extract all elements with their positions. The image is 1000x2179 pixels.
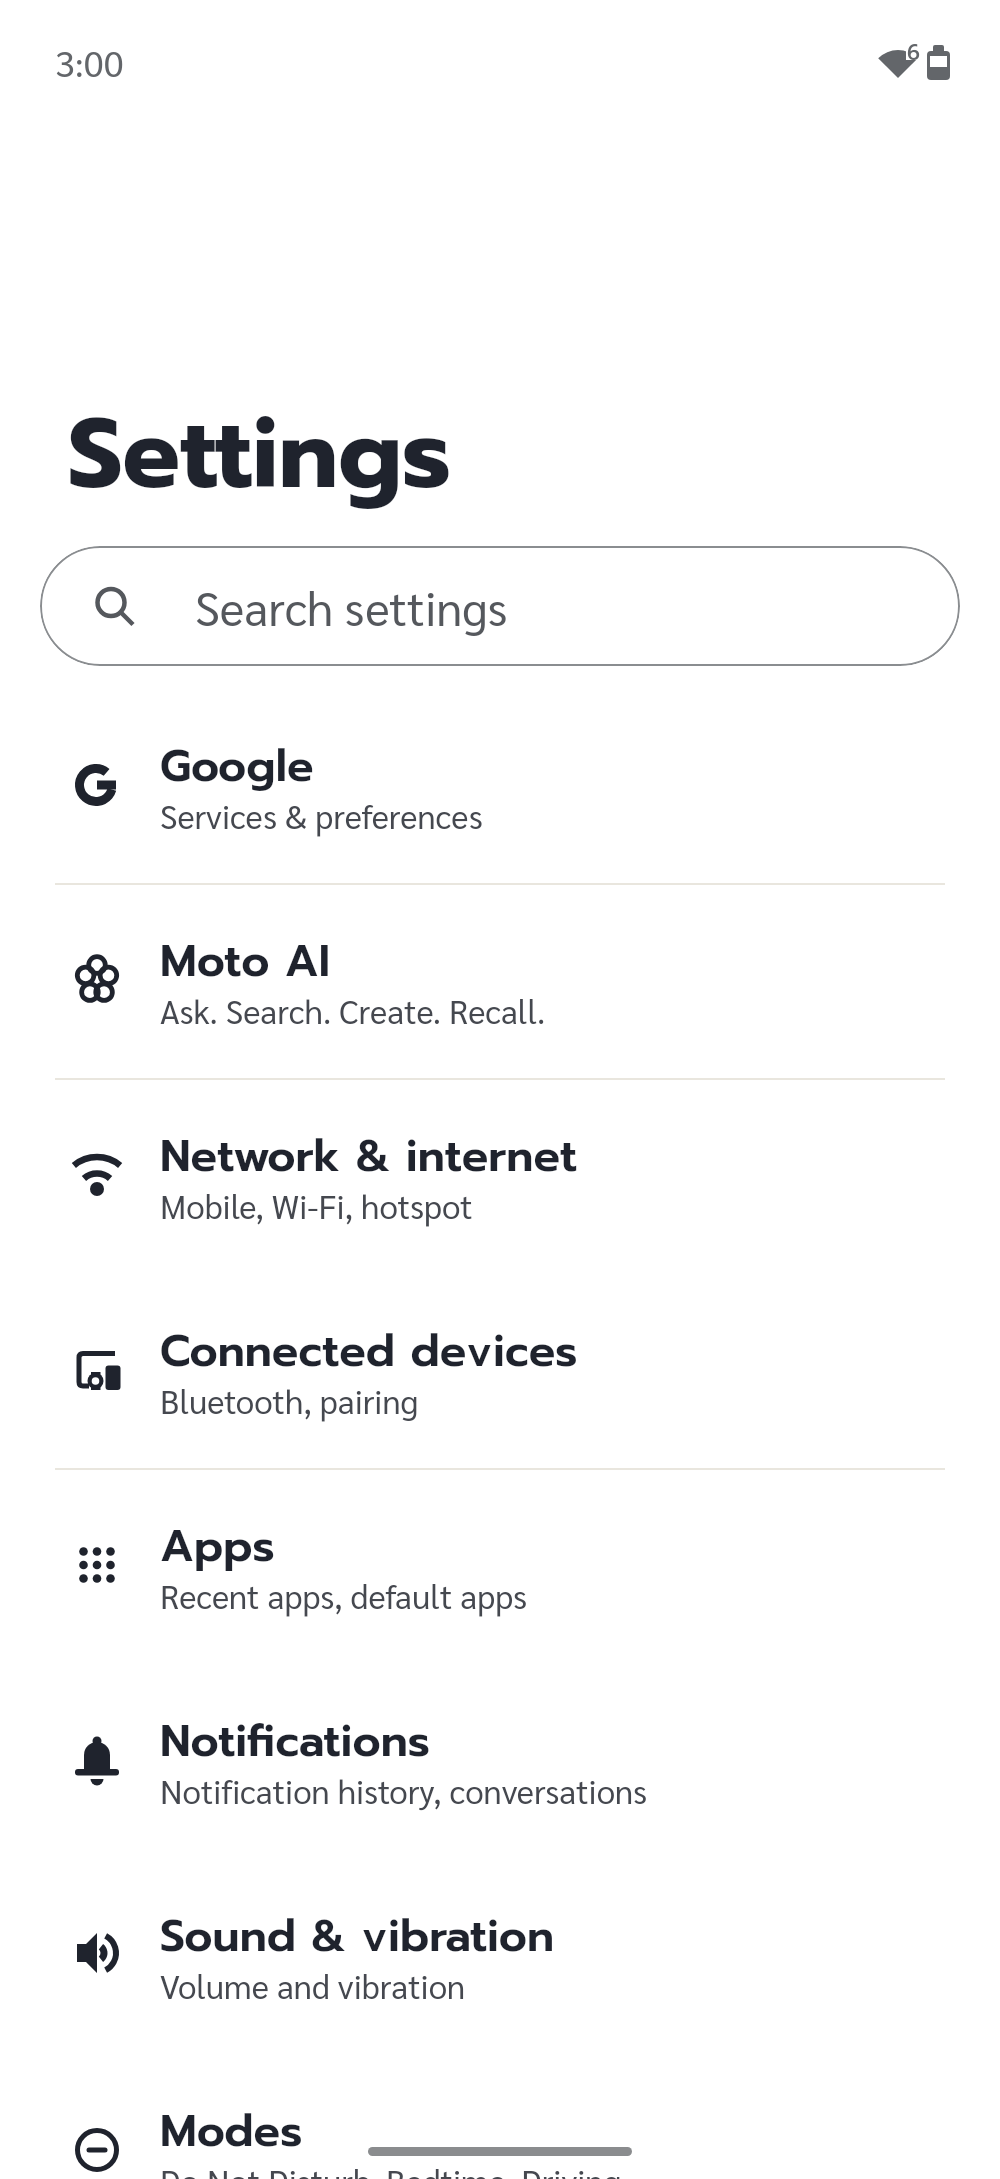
staticText: Ask. Search. Create. Recall. (160, 989, 546, 1032)
staticText: Sound & vibration (160, 1903, 555, 1970)
staticText: Do Not Disturb, Bedtime, Driving (160, 2159, 622, 2179)
staticText: Search settings (195, 576, 508, 637)
staticText: Bluetooth, pairing (160, 1379, 419, 1422)
staticText: Settings (68, 382, 451, 522)
button[interactable]: Sound & vibration (0, 1860, 1000, 2055)
button[interactable]: Modes (0, 2055, 1000, 2179)
staticText: Recent apps, default apps (160, 1574, 528, 1617)
staticText: Modes (160, 2098, 303, 2165)
button[interactable]: Google (0, 690, 1000, 885)
button[interactable]: Connected devices (0, 1275, 1000, 1470)
staticText: Moto AI (160, 928, 331, 995)
staticText: Network & internet (160, 1123, 578, 1190)
staticText: Connected devices (160, 1318, 578, 1385)
staticText: 6 (907, 37, 920, 69)
staticText: Notifications (160, 1708, 430, 1775)
staticText: 3:00 (55, 39, 124, 86)
button[interactable]: Moto AI (0, 885, 1000, 1080)
staticText: Apps (160, 1513, 275, 1580)
button[interactable]: Search settings (40, 546, 960, 666)
staticText: Mobile, Wi-Fi, hotspot (160, 1184, 473, 1227)
staticText: Google (160, 733, 314, 800)
staticText: Services & preferences (160, 794, 483, 837)
button[interactable]: Apps (0, 1470, 1000, 1665)
staticText: Volume and vibration (160, 1964, 466, 2007)
button[interactable]: Notifications (0, 1665, 1000, 1860)
staticText: Notification history, conversations (160, 1769, 647, 1812)
button[interactable]: Network & internet (0, 1080, 1000, 1275)
